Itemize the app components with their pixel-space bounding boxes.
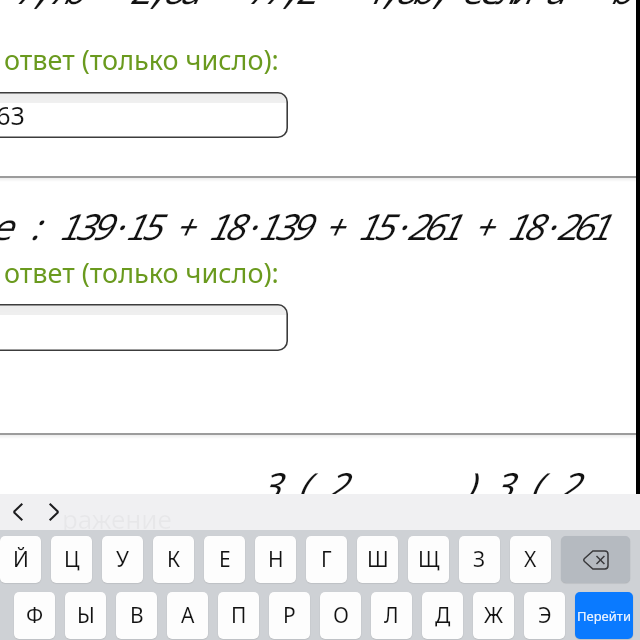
staticText: Х [524, 545, 537, 574]
staticText: 563 [0, 98, 25, 132]
button[interactable]: Э [524, 592, 565, 639]
staticText: О [333, 601, 349, 630]
button[interactable]: К [153, 536, 194, 583]
button[interactable]: Х [510, 536, 551, 583]
button[interactable]: Ф [14, 592, 55, 639]
button[interactable]: Л [371, 592, 412, 639]
staticText: Щ [418, 545, 440, 574]
staticText: ответ (только число): [4, 41, 279, 78]
staticText: Э [538, 601, 552, 630]
button[interactable]: В [116, 592, 157, 639]
staticText: В [130, 601, 144, 630]
button[interactable]: Backspace [561, 536, 630, 583]
staticText: У [116, 545, 129, 574]
staticText: Л [384, 601, 399, 630]
button[interactable]: Г [306, 536, 347, 583]
button[interactable]: У [102, 536, 143, 583]
staticText: Е [219, 545, 231, 574]
staticText: П [231, 601, 247, 630]
staticText: Й [13, 545, 29, 574]
button[interactable]: Й [0, 536, 41, 583]
button[interactable]: Next field [36, 494, 72, 530]
button[interactable]: Д [422, 592, 463, 639]
staticText: ражение [62, 501, 172, 536]
staticText: Н [268, 545, 284, 574]
button[interactable]: Р [269, 592, 310, 639]
button[interactable]: Ж [473, 592, 514, 639]
staticText: З [473, 545, 486, 574]
staticText: 3 ( 2 ) 3 ( 2 [258, 461, 574, 510]
staticText: А [181, 601, 195, 630]
button[interactable]: Е [204, 536, 245, 583]
staticText: Г [321, 545, 332, 574]
button[interactable]: Ц [51, 536, 92, 583]
button[interactable]: Ы [65, 592, 106, 639]
staticText: Перейти [577, 607, 631, 625]
staticText: Д [435, 601, 451, 630]
button[interactable]: Перейти [575, 592, 633, 639]
staticText: Ж [484, 601, 504, 630]
button[interactable]: Answer input [0, 92, 288, 138]
staticText: Ш [367, 545, 389, 574]
button[interactable]: П [218, 592, 259, 639]
button[interactable]: Answer input [0, 304, 288, 351]
button[interactable]: Ш [357, 536, 398, 583]
staticText: 7,7b + 2,8a + 77,2 + 4,8b, если a = b = [12, 0, 640, 15]
button[interactable]: Щ [408, 536, 449, 583]
staticText: К [167, 545, 181, 574]
staticText: Ц [64, 545, 80, 574]
staticText: ответ (только число): [4, 254, 279, 291]
staticText: е : 139·15 + 18·139 + 15·261 + 18·261 [0, 202, 605, 251]
staticText: Ы [77, 601, 95, 630]
button[interactable]: О [320, 592, 361, 639]
button[interactable]: А [167, 592, 208, 639]
button[interactable]: Previous field [0, 494, 36, 530]
staticText: Ф [26, 601, 44, 630]
button[interactable]: Н [255, 536, 296, 583]
button[interactable]: З [459, 536, 500, 583]
staticText: Р [283, 601, 296, 630]
